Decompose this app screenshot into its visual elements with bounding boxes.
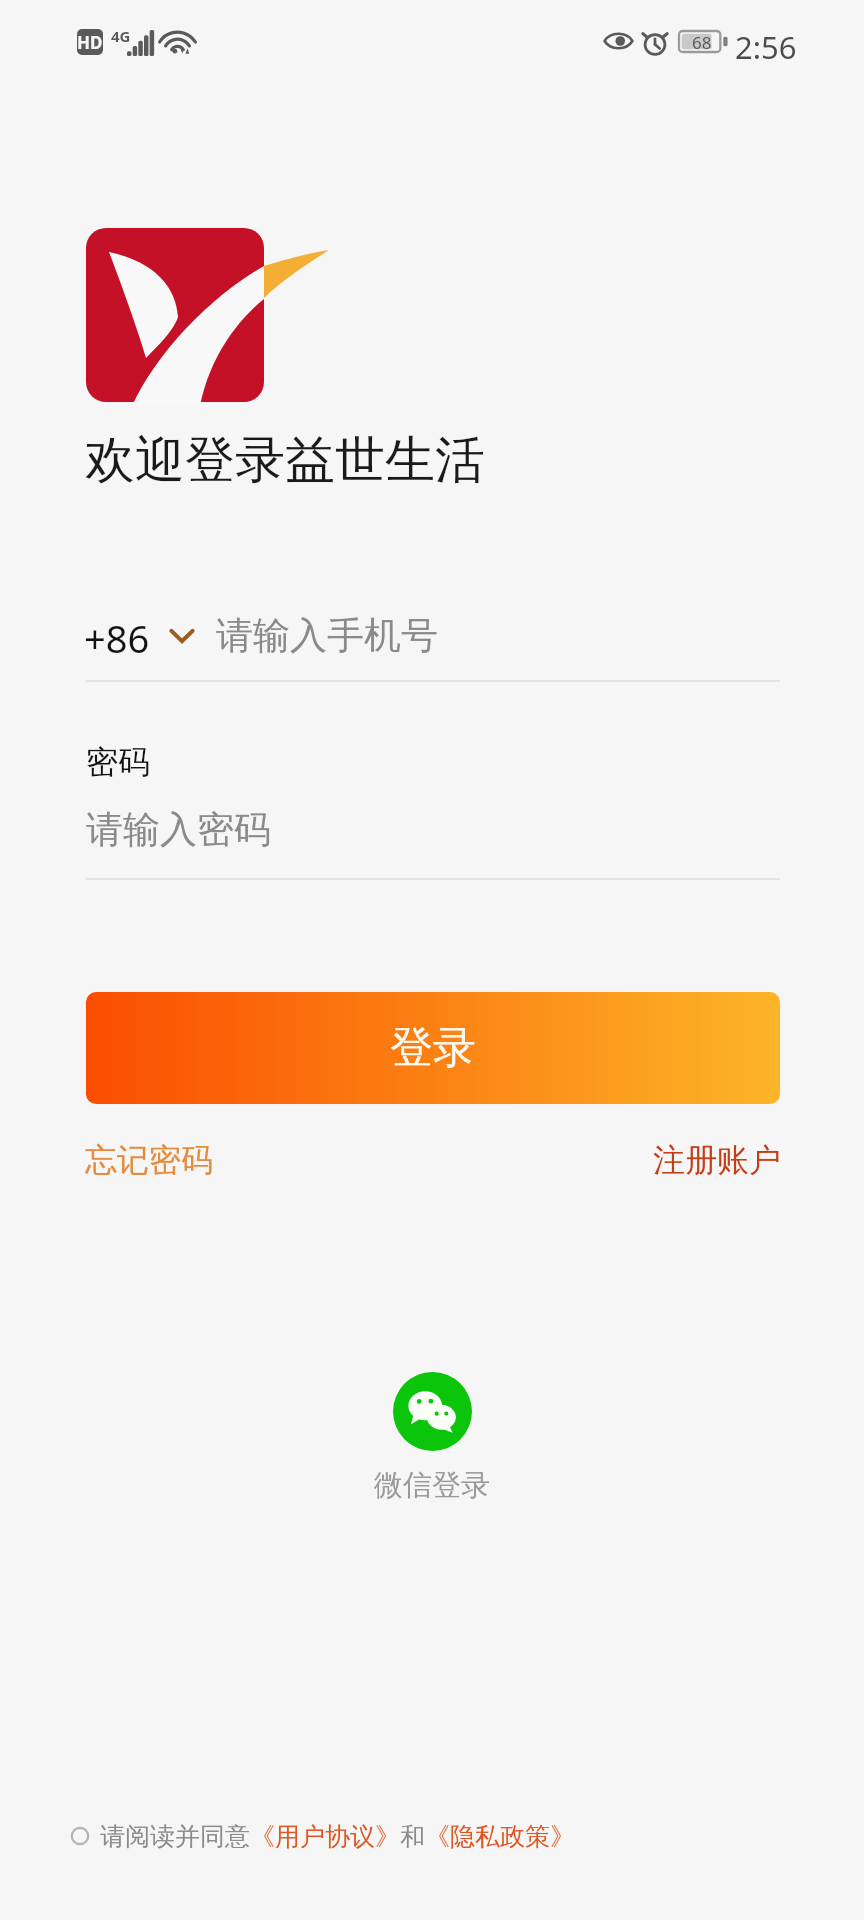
staticText: HD bbox=[77, 31, 103, 54]
button[interactable]: 忘记密码 bbox=[82, 1134, 216, 1186]
button[interactable]: 请阅读并同意 bbox=[70, 1816, 575, 1856]
staticText: 欢迎登录益世生活 bbox=[85, 429, 485, 492]
button[interactable]: WeChat login bbox=[0, 1372, 864, 1504]
staticText: 和 bbox=[400, 1821, 425, 1852]
staticText: 4G bbox=[111, 26, 131, 46]
staticText: 68 bbox=[692, 31, 712, 52]
staticText: 注册账户 bbox=[653, 1140, 781, 1180]
staticText: 《隐私政策》 bbox=[425, 1821, 575, 1852]
staticText: +86 bbox=[84, 612, 150, 664]
staticText: 请输入密码 bbox=[86, 806, 271, 853]
staticText: 请阅读并同意 bbox=[100, 1821, 250, 1852]
staticText: 微信登录 bbox=[374, 1467, 490, 1504]
button[interactable]: 请输入手机号 bbox=[210, 604, 780, 676]
staticText: 请输入手机号 bbox=[216, 612, 438, 659]
staticText: 忘记密码 bbox=[85, 1140, 213, 1180]
button[interactable]: 请输入密码 bbox=[86, 806, 780, 878]
staticText: 登录 bbox=[390, 1021, 476, 1075]
button[interactable]: 注册账户 bbox=[650, 1134, 784, 1186]
button[interactable]: Select country code bbox=[80, 604, 202, 676]
staticText: 《用户协议》 bbox=[250, 1821, 400, 1852]
staticText: 2:56 bbox=[735, 26, 797, 68]
button[interactable]: 登录 bbox=[86, 992, 780, 1104]
staticText: 密码 bbox=[86, 742, 150, 782]
